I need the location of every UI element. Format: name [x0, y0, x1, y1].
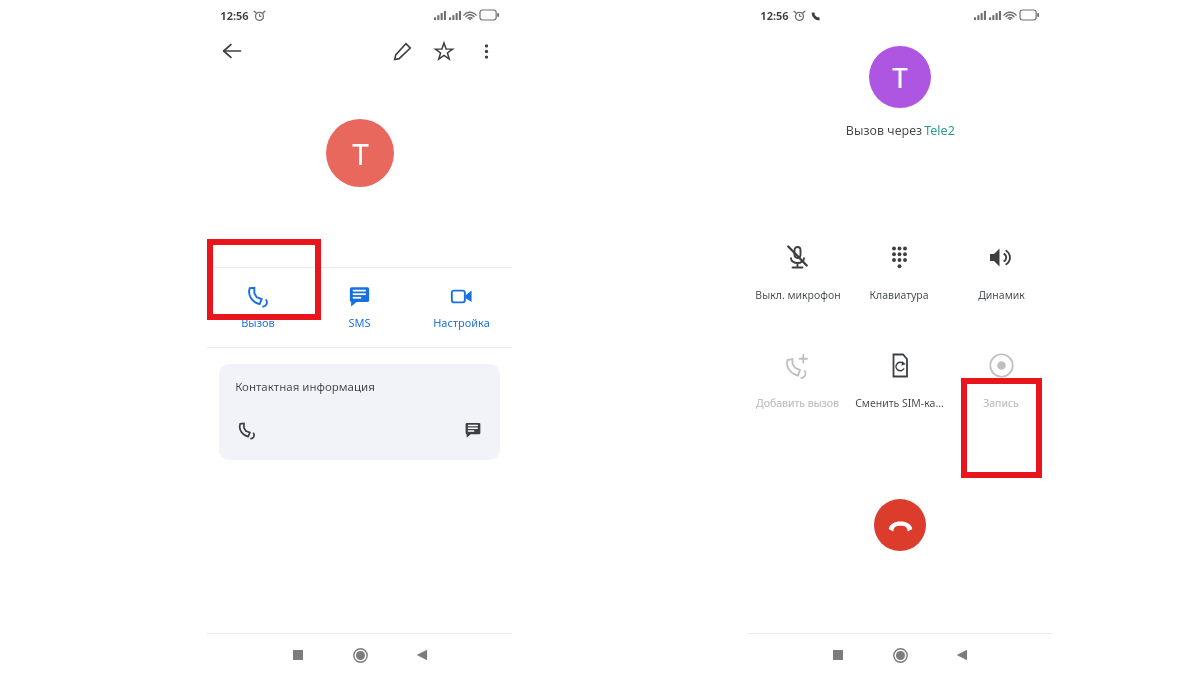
- button[interactable]: Message: [459, 416, 487, 444]
- button[interactable]: SMS: [308, 267, 410, 348]
- button[interactable]: Back: [405, 638, 439, 672]
- button[interactable]: Back: [215, 34, 249, 68]
- button[interactable]: Добавить вызов: [747, 347, 848, 427]
- staticText: SMS: [348, 315, 371, 330]
- button[interactable]: Запись: [950, 347, 1052, 427]
- staticText: Сменить SIM-ка...: [855, 396, 944, 410]
- staticText: Контактная информация: [235, 379, 375, 395]
- button[interactable]: Динамик: [950, 239, 1052, 319]
- staticText: Запись: [983, 396, 1019, 410]
- button[interactable]: Вызов: [207, 267, 308, 348]
- button[interactable]: Edit: [385, 34, 419, 68]
- button[interactable]: Recents: [281, 638, 315, 672]
- staticText: Вызов: [241, 315, 275, 330]
- staticText: Настройка: [433, 315, 490, 330]
- button[interactable]: More options: [469, 34, 503, 68]
- button[interactable]: Contact photo: [326, 119, 394, 187]
- button[interactable]: Call: [232, 416, 260, 444]
- button[interactable]: Контактная информация: [219, 364, 500, 460]
- button[interactable]: End call: [874, 499, 926, 551]
- staticText: Tele2: [924, 122, 955, 139]
- staticText: T: [352, 134, 369, 173]
- staticText: 12:56: [220, 8, 249, 23]
- staticText: Вызов через: [844, 122, 924, 139]
- button[interactable]: Клавиатура: [848, 239, 950, 319]
- button[interactable]: Сменить SIM-ка...: [848, 347, 950, 427]
- button[interactable]: Home: [343, 638, 377, 672]
- button[interactable]: Favorite: [427, 34, 461, 68]
- button[interactable]: Выкл. микрофон: [747, 239, 848, 319]
- button[interactable]: Recents: [821, 638, 855, 672]
- button[interactable]: Back: [945, 638, 979, 672]
- staticText: Клавиатура: [869, 288, 929, 302]
- staticText: 12:56: [760, 8, 789, 23]
- button[interactable]: Home: [883, 638, 917, 672]
- button[interactable]: Настройка: [410, 267, 512, 348]
- staticText: T: [892, 59, 908, 96]
- staticText: Динамик: [978, 288, 1025, 302]
- staticText: Добавить вызов: [756, 396, 839, 410]
- staticText: Выкл. микрофон: [755, 288, 841, 302]
